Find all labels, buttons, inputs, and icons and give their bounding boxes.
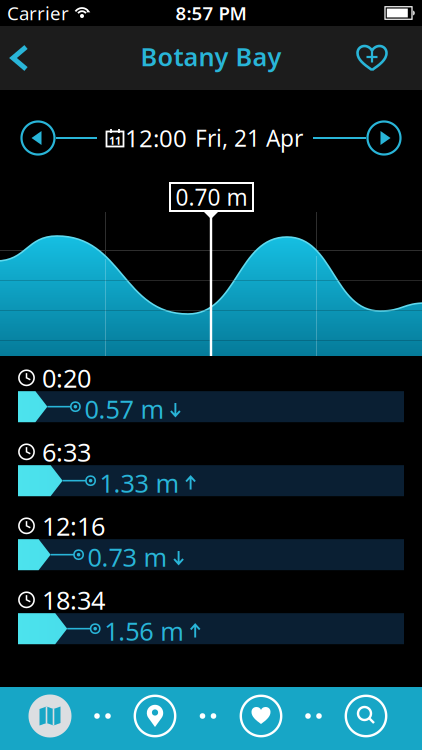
staticText: 6:33 — [42, 435, 91, 469]
staticText: 0.57 m — [84, 392, 164, 426]
button[interactable]: Back — [0, 27, 30, 89]
staticText: Fri, 21 Apr — [195, 123, 303, 153]
staticText: Botany Bay — [140, 40, 281, 73]
button[interactable]: Next day — [366, 120, 402, 156]
staticText: 18:34 — [42, 583, 105, 617]
staticText: 11 — [109, 133, 121, 148]
staticText: 0.70 m — [175, 182, 247, 212]
button[interactable]: Map — [28, 694, 71, 737]
staticText: 0.73 m — [88, 540, 168, 574]
staticText: 12:00 — [125, 122, 187, 154]
staticText: 1.33 m — [100, 466, 180, 500]
button[interactable]: Search — [344, 694, 387, 737]
button[interactable]: Add to favourites — [355, 27, 422, 89]
staticText: 1.56 m — [104, 614, 184, 648]
button[interactable]: Previous day — [20, 120, 56, 156]
staticText: Carrier — [7, 1, 69, 25]
staticText: 12:16 — [42, 509, 105, 543]
staticText: 0:20 — [42, 361, 91, 395]
button[interactable]: Nearby locations — [133, 694, 176, 737]
staticText: 8:57 PM — [175, 1, 246, 25]
button[interactable]: Favourites — [239, 694, 282, 737]
